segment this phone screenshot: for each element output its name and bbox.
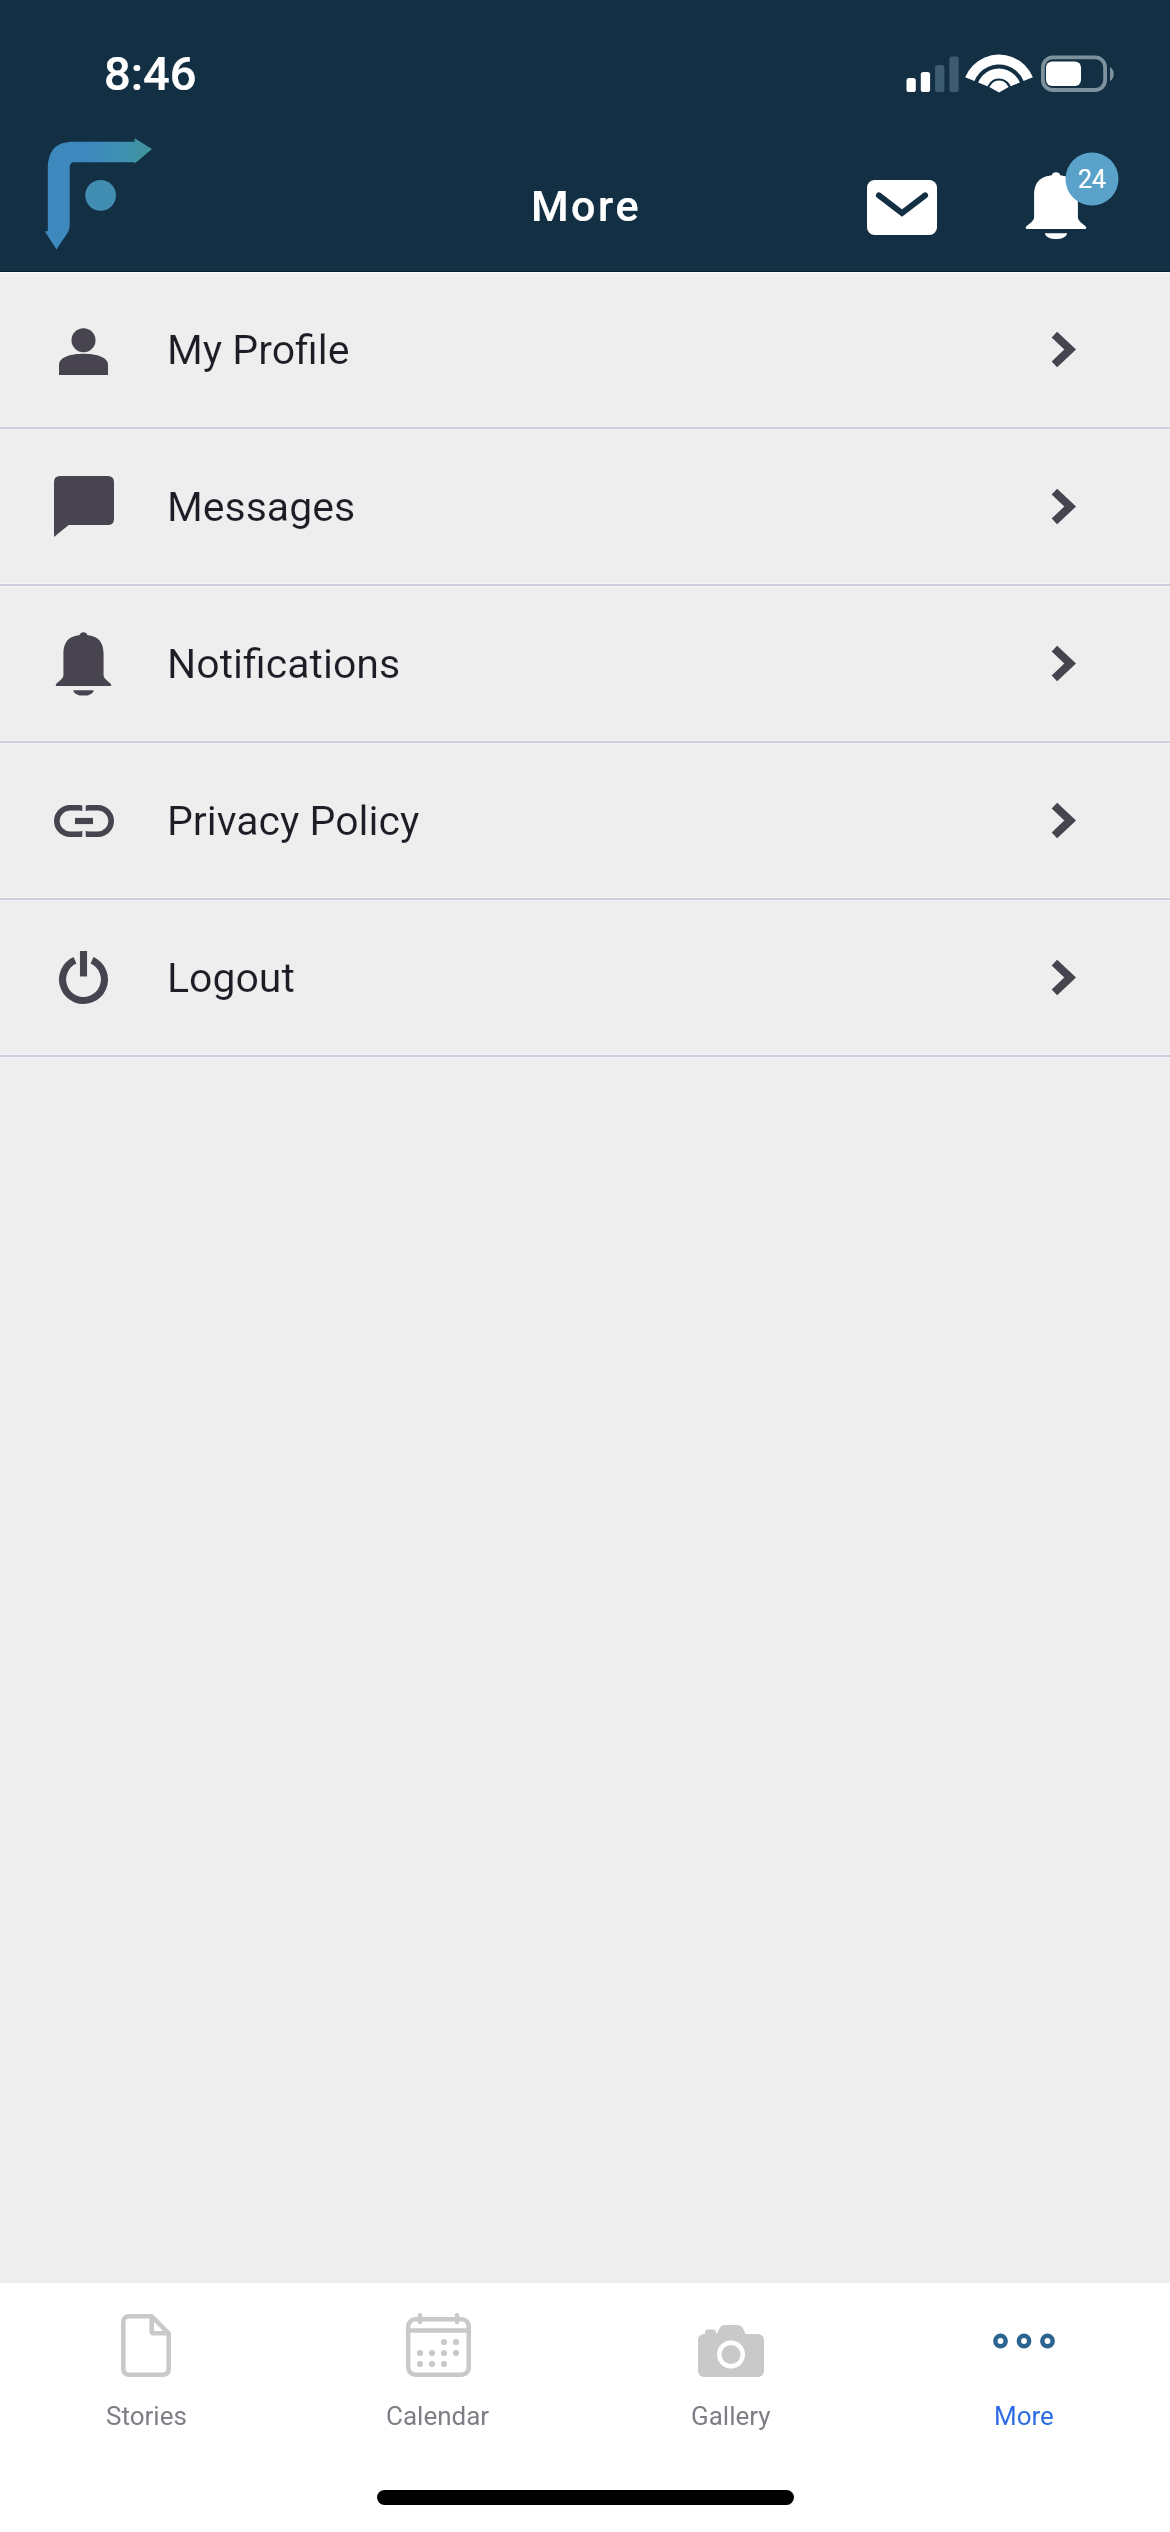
staticText: Logout <box>167 954 295 1002</box>
button[interactable]: Stories <box>0 2283 292 2463</box>
staticText: Calendar <box>386 2401 490 2431</box>
staticText: Gallery <box>691 2401 771 2431</box>
button[interactable]: Notifications <box>1003 143 1121 255</box>
staticText: Stories <box>106 2401 187 2431</box>
staticText: Privacy Policy <box>167 797 420 845</box>
staticText: Messages <box>167 483 356 531</box>
staticText: My Profile <box>167 326 350 374</box>
staticText: 8:46 <box>104 46 197 101</box>
button[interactable]: Messages <box>0 430 1170 587</box>
button[interactable]: Notifications <box>0 587 1170 744</box>
button[interactable]: Gallery <box>584 2283 877 2463</box>
button[interactable]: Messages <box>847 152 957 262</box>
button[interactable]: Privacy Policy <box>0 744 1170 901</box>
button[interactable]: Calendar <box>292 2283 584 2463</box>
button[interactable]: My Profile <box>0 273 1170 430</box>
staticText: More <box>994 2401 1054 2431</box>
staticText: 24 <box>1065 165 1119 194</box>
staticText: Notifications <box>167 640 401 688</box>
button[interactable]: More <box>877 2283 1170 2463</box>
staticText: More <box>1 181 1170 231</box>
button[interactable]: Logout <box>0 901 1170 1058</box>
